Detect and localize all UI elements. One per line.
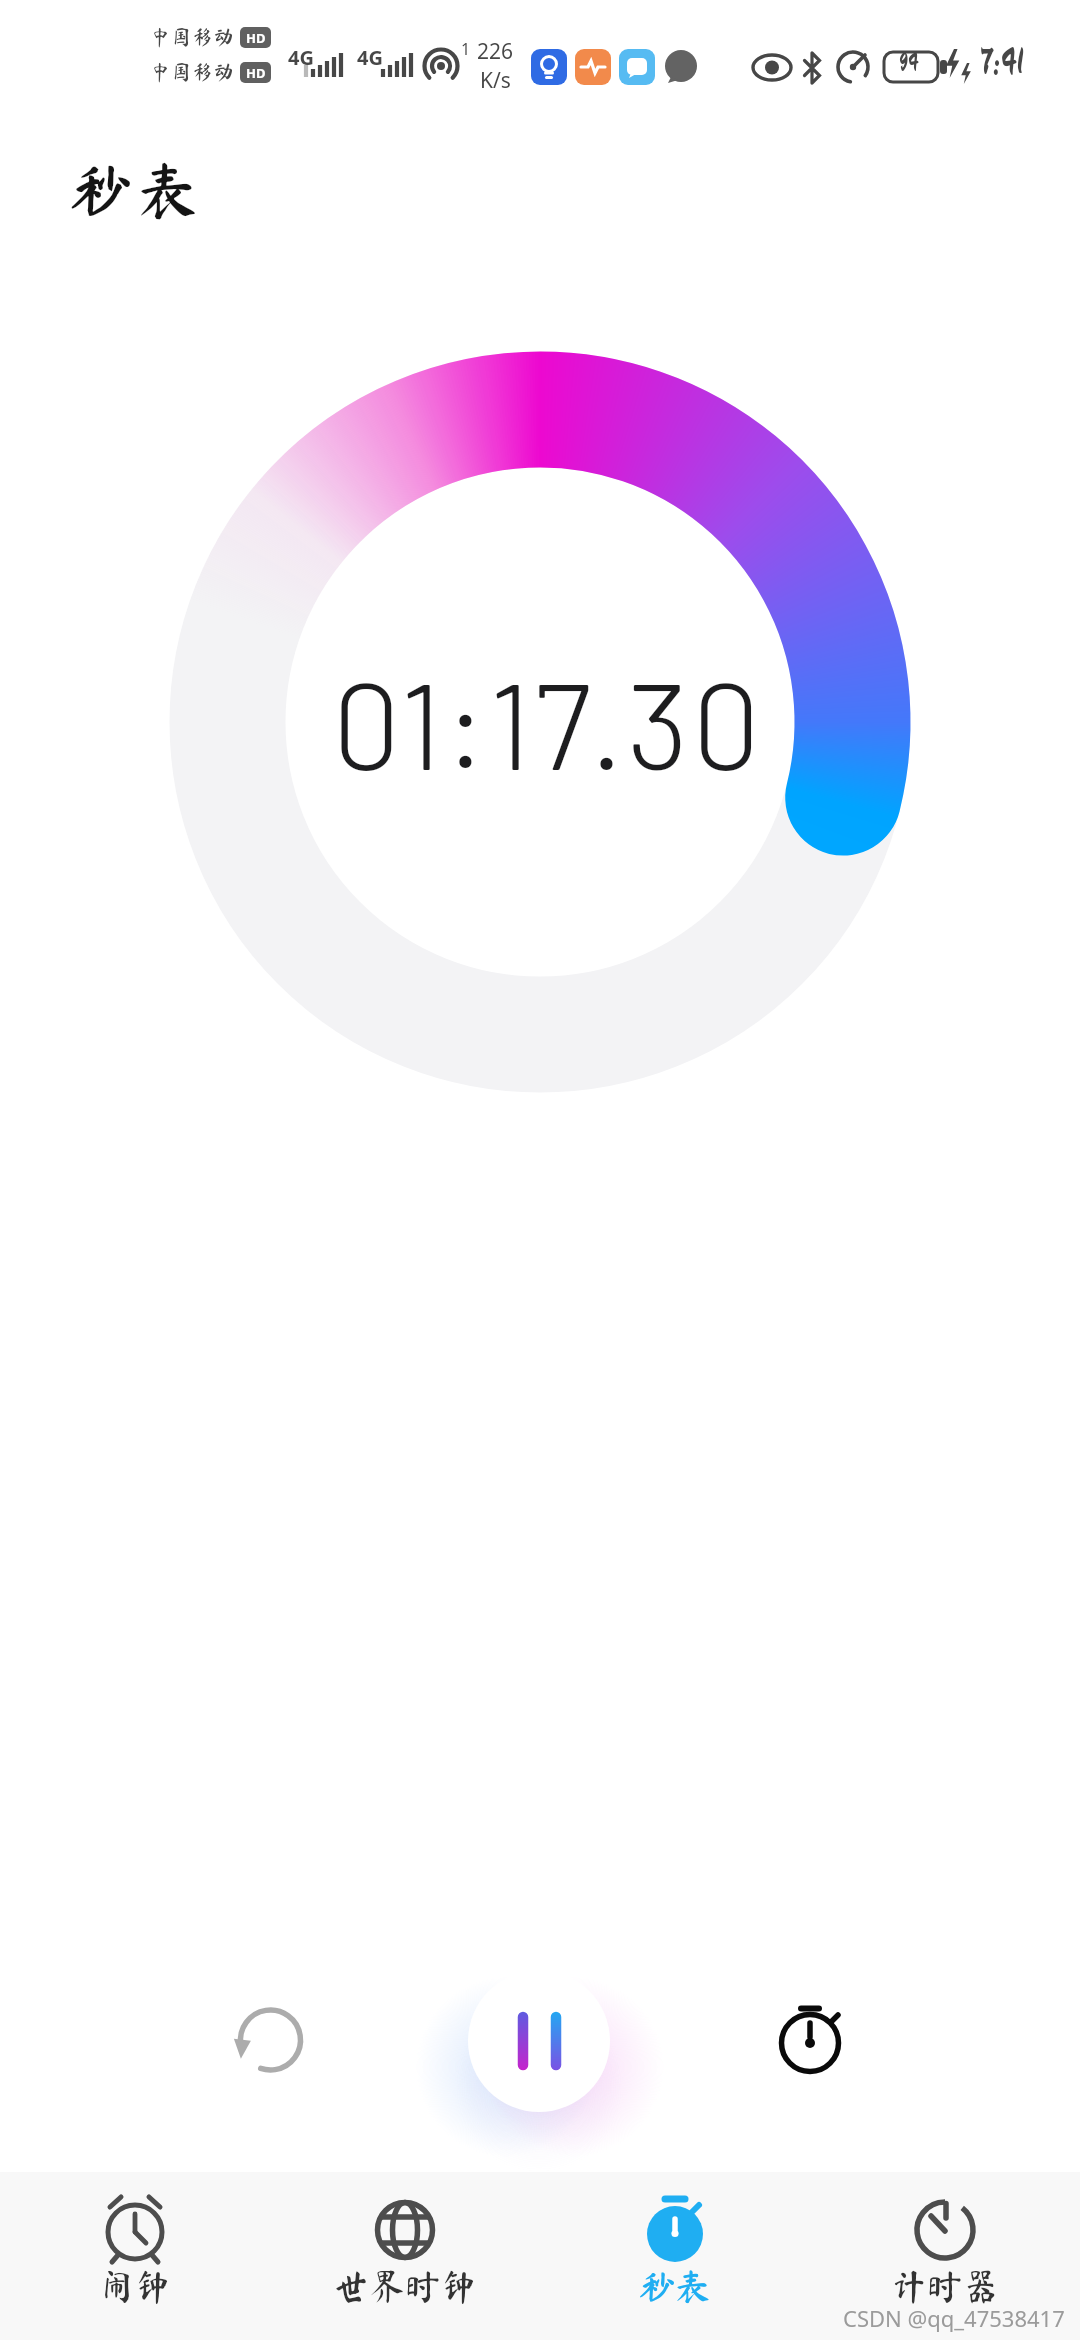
staticText: 7:41 [980, 44, 1024, 80]
staticText: 中国移动 [150, 27, 234, 48]
button[interactable] [210, 1981, 330, 2101]
staticText: K/s [480, 66, 511, 95]
button[interactable]: 闹钟 [0, 2172, 270, 2340]
staticText: HD [246, 29, 266, 47]
staticText: 94 [899, 51, 919, 75]
staticText: 秒表 [639, 2268, 712, 2304]
staticText: 计时器 [891, 2268, 1000, 2304]
staticText: 世界时钟 [333, 2268, 478, 2304]
staticText: 秒表 [70, 158, 205, 220]
staticText: 4G [288, 44, 314, 71]
staticText: 中国移动 [150, 62, 234, 83]
button[interactable]: 世界时钟 [270, 2172, 540, 2340]
staticText: 01:17.30 [332, 648, 764, 794]
staticText: 闹钟 [99, 2268, 172, 2304]
staticText: HD [246, 64, 266, 82]
button[interactable]: 计时器 [810, 2172, 1080, 2340]
button[interactable] [750, 1981, 870, 2101]
button[interactable] [455, 1957, 623, 2125]
staticText: 1 [461, 38, 471, 60]
staticText: 226 [477, 37, 514, 66]
staticText: CSDN @qq_47538417 [843, 2303, 1065, 2333]
button[interactable]: 秒表 [540, 2172, 810, 2340]
staticText: 4G [357, 44, 383, 71]
